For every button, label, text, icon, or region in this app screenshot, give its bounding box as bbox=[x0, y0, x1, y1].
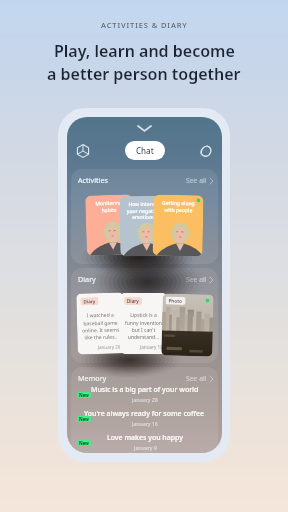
staticText: Diary bbox=[78, 274, 96, 284]
staticText: See all bbox=[186, 374, 207, 383]
staticText: January 16 bbox=[132, 420, 158, 427]
button[interactable]: Call bbox=[199, 144, 213, 158]
staticText: Diary bbox=[83, 298, 95, 304]
staticText: Love makes you happy bbox=[107, 433, 183, 443]
button[interactable]: How intense your negative emotions bbox=[120, 196, 167, 256]
button[interactable]: Menu bbox=[76, 144, 90, 158]
button[interactable]: Monitoring habits bbox=[85, 194, 134, 256]
staticText: January 28 bbox=[132, 396, 158, 403]
staticText: ACTIVITIES & DIARY bbox=[101, 20, 188, 30]
button[interactable]: See all bbox=[186, 275, 213, 284]
button[interactable]: New bbox=[71, 431, 218, 453]
button[interactable]: New bbox=[71, 383, 218, 405]
staticText: New bbox=[79, 440, 89, 446]
staticText: January 18 bbox=[140, 344, 163, 350]
button[interactable]: Chat bbox=[125, 141, 165, 160]
staticText: Chat bbox=[136, 145, 154, 156]
staticText: See all bbox=[186, 275, 207, 284]
staticText: New bbox=[79, 416, 89, 422]
staticText: Monitoring habits bbox=[88, 199, 130, 215]
button[interactable]: Diary bbox=[120, 293, 167, 354]
staticText: Memory bbox=[78, 373, 107, 383]
staticText: January 9 bbox=[134, 444, 157, 451]
button[interactable]: Diary bbox=[76, 292, 125, 355]
staticText: Diary bbox=[127, 298, 139, 304]
staticText: Getting along with people bbox=[156, 200, 200, 214]
button[interactable]: See all bbox=[186, 374, 213, 383]
staticText: Lipstick is a funny invention but I can'… bbox=[124, 312, 163, 340]
staticText: January 20 bbox=[97, 343, 121, 350]
staticText: You're always ready for some coffee bbox=[84, 409, 205, 419]
staticText: How intense your negative emotions bbox=[123, 201, 164, 221]
staticText: I watched a baseball game online. It see… bbox=[81, 311, 120, 340]
staticText: Activities bbox=[78, 175, 108, 185]
staticText: Music is a big part of your world bbox=[91, 385, 199, 395]
button[interactable]: Getting along with people bbox=[152, 195, 204, 256]
button[interactable]: See all bbox=[186, 176, 213, 185]
staticText: New bbox=[79, 392, 89, 398]
button[interactable]: New bbox=[71, 407, 218, 429]
staticText: See all bbox=[186, 176, 207, 185]
staticText: Photo bbox=[168, 297, 183, 304]
button[interactable]: Photo bbox=[161, 293, 214, 357]
staticText: Play, learn and become bbox=[54, 40, 235, 62]
staticText: a better person together bbox=[47, 63, 241, 85]
